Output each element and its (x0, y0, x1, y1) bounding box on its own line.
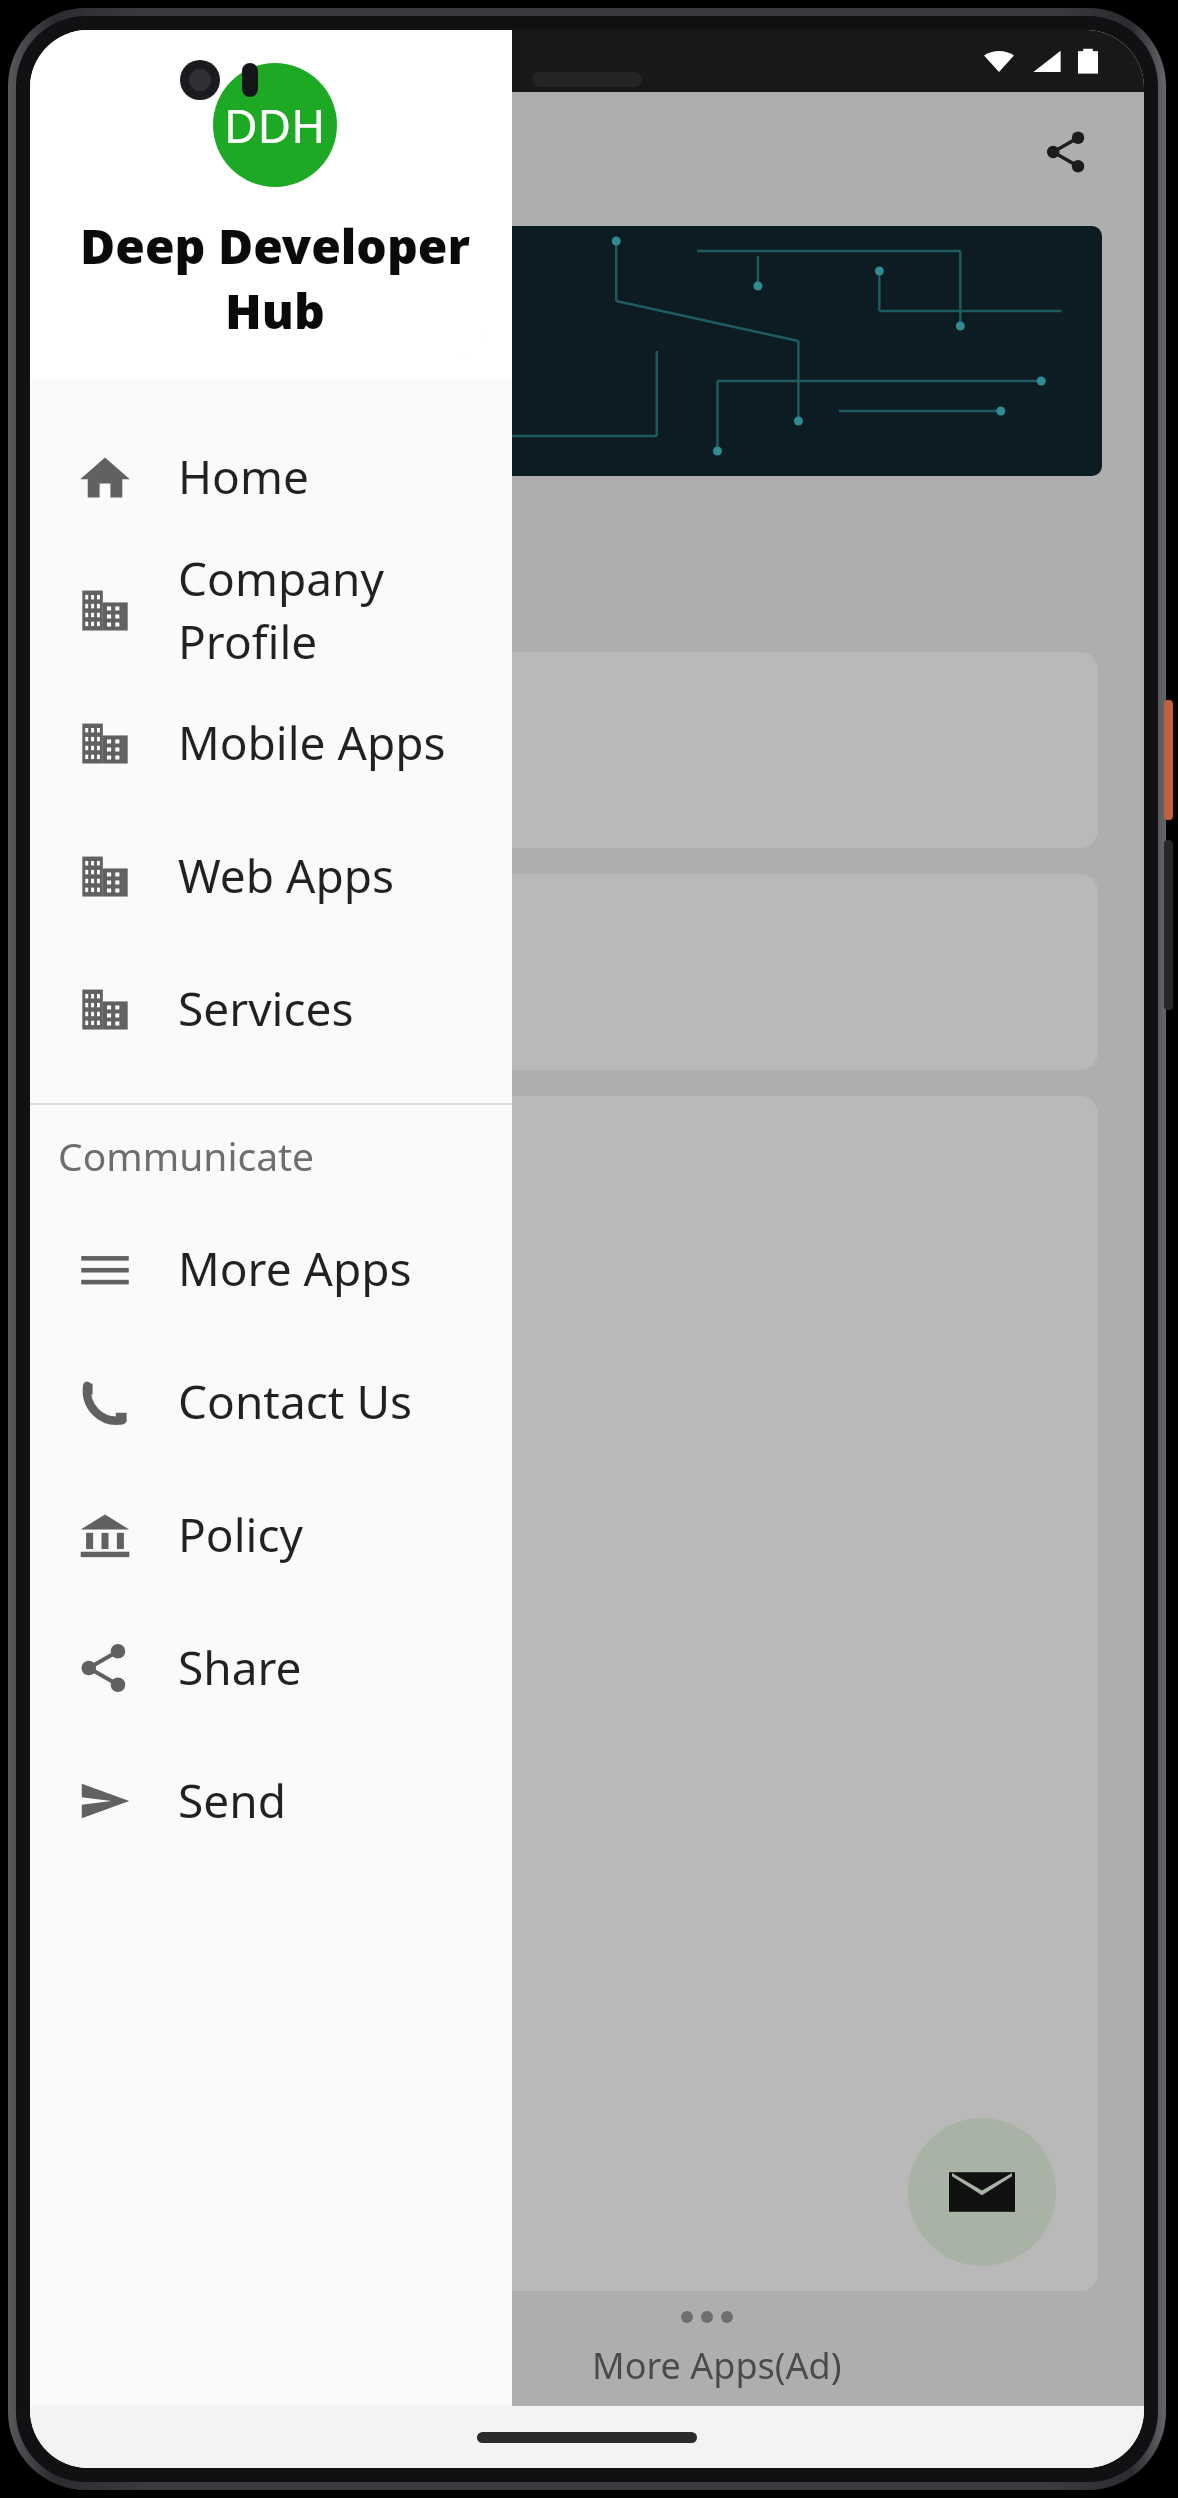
button[interactable]: FILE (60, 652, 1098, 848)
staticText: Contact Us (178, 1370, 413, 1433)
staticText: Policy (178, 1503, 303, 1566)
button[interactable]: Policy (30, 1468, 512, 1601)
staticText: Mobile Apps (178, 711, 446, 774)
button[interactable]: Services (30, 942, 512, 1075)
staticText: Share (178, 1636, 302, 1699)
button[interactable]: Contact Us (30, 1335, 512, 1468)
staticText: UB (110, 260, 191, 336)
staticText: Send (178, 1769, 286, 1832)
staticText: Services (178, 977, 354, 1040)
staticText: s (68, 1224, 85, 1270)
staticText: DDH (224, 94, 326, 157)
button[interactable]: Share (30, 1601, 512, 1734)
staticText: ervices (30, 532, 226, 614)
button[interactable]: More Apps (30, 1202, 512, 1335)
button[interactable]: Send email (908, 2118, 1056, 2266)
button[interactable]: Share (1028, 113, 1106, 191)
staticText: Company Profile (178, 547, 512, 673)
staticText: More Apps(Ad) (592, 2341, 842, 2390)
button[interactable]: S (60, 1096, 1098, 2291)
button[interactable]: Company Profile (30, 543, 512, 676)
staticText: Web Apps (178, 844, 395, 907)
button[interactable]: Web Apps (30, 809, 512, 942)
button[interactable]: DDH (66, 48, 484, 358)
staticText: More Apps (178, 1237, 412, 1300)
button[interactable]: Send (30, 1734, 512, 1867)
button[interactable]: Home (30, 410, 512, 543)
staticText: Communicate (58, 1129, 315, 1182)
button[interactable]: Mobile Apps (30, 676, 512, 809)
button[interactable] (60, 874, 1098, 1070)
staticText: Home (178, 445, 309, 508)
staticText: Deep Developer Hub (66, 213, 484, 343)
staticText: S (68, 1124, 105, 1214)
staticText: FILE (72, 705, 208, 795)
